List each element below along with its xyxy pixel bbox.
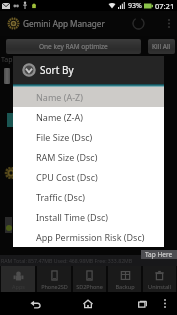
button[interactable]: Uninstall (143, 266, 176, 292)
button[interactable]: Name (A-Z) (13, 87, 164, 107)
button[interactable]: File Size (Dsc) (13, 127, 164, 147)
staticText: One key RAM optimize (39, 42, 108, 51)
button[interactable]: Back (9, 292, 61, 315)
button[interactable]: Refresh (127, 11, 149, 36)
button[interactable]: Recent apps (117, 292, 169, 315)
button[interactable]: Tap Here (141, 250, 177, 259)
button[interactable]: More options (161, 11, 177, 36)
button[interactable]: Install Time (Dsc) (13, 207, 164, 227)
staticText: CPU Cost (Dsc) (36, 171, 98, 183)
staticText: Uninstall (148, 283, 171, 290)
button[interactable]: Open drawer (4, 68, 10, 84)
staticText: File Size (Dsc) (36, 131, 93, 143)
staticText: Tap (1, 55, 13, 65)
button[interactable]: Traffic (Dsc) (13, 187, 164, 207)
button[interactable]: One key RAM optimize (6, 39, 141, 54)
button[interactable]: Apps (1, 266, 35, 292)
staticText: Kill All (152, 42, 171, 51)
staticText: Name (A-Z) (36, 91, 83, 103)
button[interactable]: Backup (108, 266, 141, 292)
staticText: Apps (12, 283, 25, 290)
staticText: Phone2SD (41, 283, 68, 290)
staticText: Name (Z-A) (36, 111, 83, 123)
button[interactable]: CPU Cost (Dsc) (13, 167, 164, 187)
staticText: Backup (115, 283, 135, 290)
staticText: 07:21 (155, 1, 175, 11)
button[interactable]: Kill All (148, 39, 175, 54)
staticText: App Permission Risk (Dsc) (36, 231, 145, 243)
staticText: Traffic (Dsc) (36, 191, 85, 203)
staticText: SD2Phone (76, 283, 103, 290)
staticText: Gemini App Manager (23, 18, 105, 29)
staticText: Tap Here (145, 250, 173, 259)
staticText: RAM Total: 857.47MB Used: 468.98MB Free:… (1, 257, 133, 264)
staticText: Sort By (40, 63, 74, 77)
staticText: RAM Size (Dsc) (36, 151, 98, 163)
button[interactable]: App Permission Risk (Dsc) (13, 227, 164, 247)
button[interactable]: RAM Size (Dsc) (13, 147, 164, 167)
button[interactable]: Phone2SD (37, 266, 71, 292)
staticText: 93% (128, 1, 142, 11)
button[interactable]: SD2Phone (73, 266, 106, 292)
staticText: Install Time (Dsc) (36, 211, 108, 223)
button[interactable]: Name (Z-A) (13, 107, 164, 127)
button[interactable]: Home (62, 292, 114, 315)
button[interactable]: Menu (154, 292, 175, 315)
